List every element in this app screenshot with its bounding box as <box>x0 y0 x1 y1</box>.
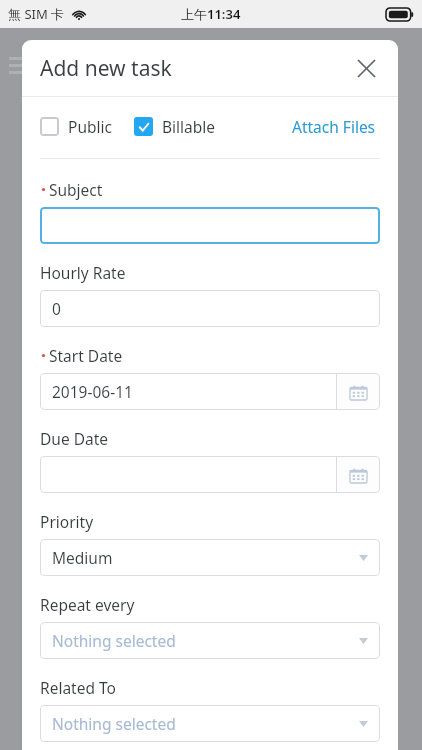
staticText: Attach Files <box>292 116 376 137</box>
button[interactable]: Attach Files <box>288 112 380 141</box>
button[interactable] <box>40 207 380 244</box>
staticText: Medium <box>52 547 113 568</box>
button[interactable]: Nothing selected <box>40 622 380 659</box>
staticText: Nothing selected <box>52 713 176 734</box>
staticText: Public <box>68 116 112 137</box>
staticText: Nothing selected <box>52 630 176 651</box>
button[interactable]: Billable <box>134 114 216 139</box>
button[interactable]: Medium <box>40 539 380 576</box>
button[interactable]: Public <box>40 114 112 139</box>
staticText: Add new task <box>40 54 172 83</box>
staticText: Start Date <box>49 345 123 366</box>
staticText: 2019-06-11 <box>52 381 133 402</box>
staticText: 上午11:34 <box>181 5 241 23</box>
staticText: Priority <box>40 511 94 532</box>
button[interactable]: Pick date <box>40 456 380 493</box>
staticText: Related To <box>40 677 116 698</box>
staticText: 無 SIM 卡 <box>8 5 65 23</box>
staticText: Due Date <box>40 428 109 449</box>
button[interactable]: Nothing selected <box>40 705 380 742</box>
staticText: Repeat every <box>40 594 135 615</box>
staticText: Hourly Rate <box>40 262 126 283</box>
staticText: Billable <box>162 116 216 137</box>
staticText: 0 <box>52 298 61 319</box>
button[interactable]: 0 <box>40 290 380 327</box>
staticText: Subject <box>49 179 103 200</box>
button[interactable]: Pick date <box>40 373 380 410</box>
button[interactable]: Close <box>344 46 388 90</box>
